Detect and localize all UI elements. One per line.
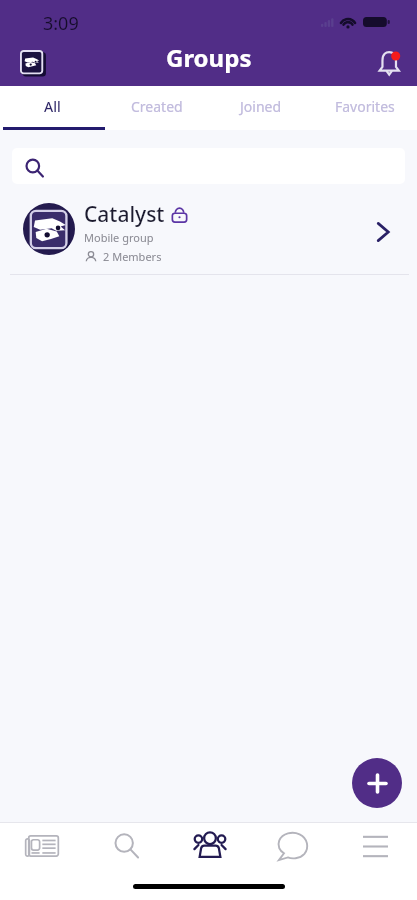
button[interactable]: Search (12, 148, 405, 184)
button[interactable]: Groups (168, 823, 251, 869)
staticText: Favorites (335, 97, 395, 116)
button[interactable]: Menu (334, 823, 417, 869)
staticText: Catalyst (84, 200, 165, 229)
staticText: Mobile group (84, 230, 154, 245)
staticText: All (44, 97, 61, 116)
staticText: Created (131, 97, 183, 116)
button[interactable]: Catalyst (0, 197, 417, 275)
button[interactable]: Chat (251, 823, 334, 869)
button[interactable]: All (0, 86, 105, 130)
staticText: 2 Members (103, 249, 162, 264)
staticText: Groups (166, 41, 252, 74)
staticText: Joined (240, 97, 282, 116)
button[interactable]: News (0, 823, 84, 869)
button[interactable]: Notifications (377, 47, 403, 77)
button[interactable]: Created (105, 86, 209, 130)
button[interactable]: Create group (352, 758, 402, 808)
staticText: 3:09 (43, 11, 79, 36)
button[interactable]: Favorites (313, 86, 417, 130)
button[interactable]: App logo (20, 50, 47, 77)
button[interactable]: Joined (209, 86, 313, 130)
button[interactable]: Search (84, 823, 168, 869)
